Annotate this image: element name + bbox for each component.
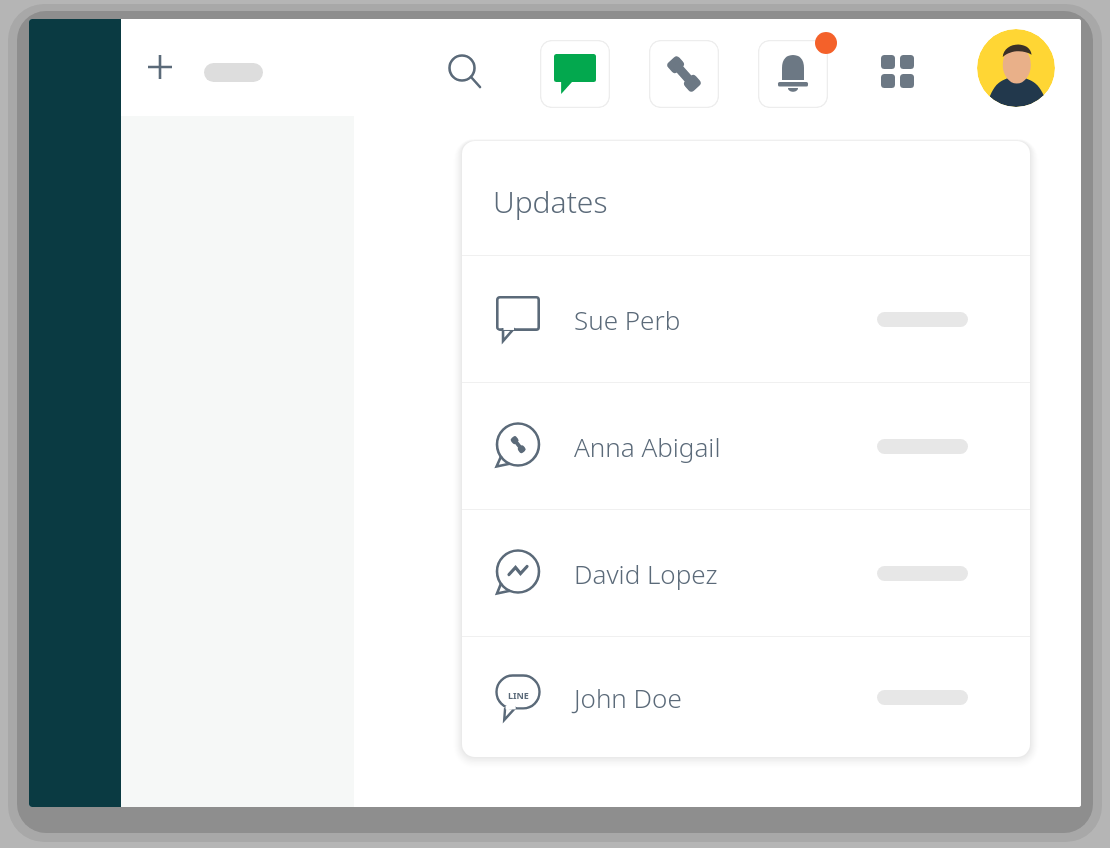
button[interactable]: Search (444, 51, 488, 95)
button[interactable]: Profile (977, 29, 1055, 107)
button[interactable] (204, 63, 263, 82)
staticText: David Lopez (574, 556, 718, 591)
button[interactable]: LINE (462, 637, 1030, 757)
button[interactable]: Calls (649, 40, 719, 108)
button[interactable]: Add (145, 52, 175, 82)
button[interactable]: Notifications (758, 40, 828, 108)
button[interactable]: David Lopez (462, 510, 1030, 636)
button[interactable]: Apps (877, 52, 923, 96)
staticText: John Doe (574, 680, 682, 715)
staticText: Sue Perb (574, 302, 681, 337)
button[interactable]: Sue Perb (462, 256, 1030, 382)
staticText: Updates (493, 181, 608, 222)
staticText: LINE (508, 689, 529, 701)
button[interactable]: Messages (540, 40, 610, 108)
button[interactable]: Anna Abigail (462, 383, 1030, 509)
staticText: Anna Abigail (574, 429, 721, 464)
